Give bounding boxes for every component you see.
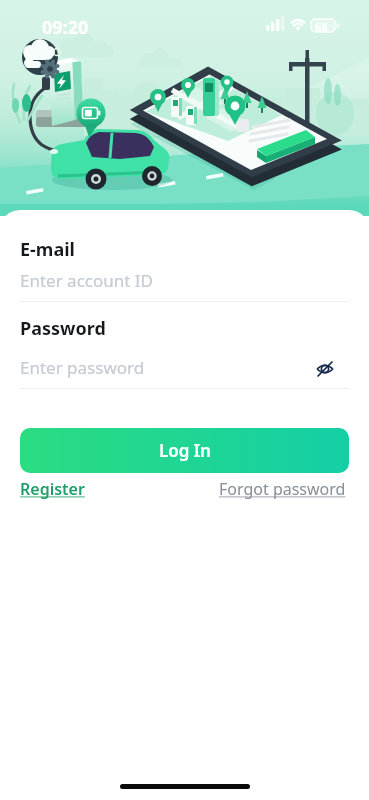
staticText: 09:20 (42, 15, 89, 40)
staticText: 68 (315, 19, 328, 34)
staticText: Register (20, 478, 85, 500)
button[interactable]: Enter account ID (0, 262, 369, 302)
staticText: Log In (159, 439, 211, 462)
button[interactable]: Log In (20, 428, 349, 473)
button[interactable]: Enter password (0, 349, 369, 389)
staticText: Enter account ID (20, 269, 154, 292)
staticText: Enter password (20, 356, 145, 379)
button[interactable]: Register (20, 478, 85, 500)
button[interactable] (314, 358, 336, 380)
staticText: Password (20, 316, 106, 341)
button[interactable]: Forgot password (219, 478, 346, 500)
staticText: E-mail (20, 237, 75, 262)
staticText: Forgot password (219, 478, 346, 500)
